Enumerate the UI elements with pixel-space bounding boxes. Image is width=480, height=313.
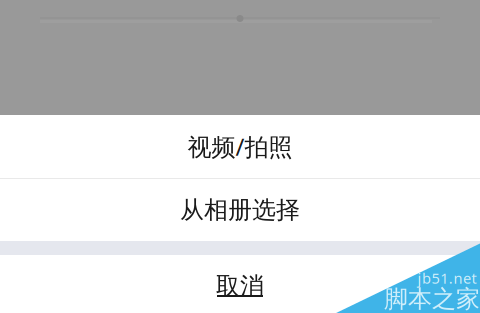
button[interactable]: 从相册选择 bbox=[0, 179, 480, 241]
staticText: 取消 bbox=[216, 271, 264, 301]
staticText: jb51.net bbox=[417, 268, 477, 288]
button[interactable]: 视频/拍照 bbox=[0, 115, 480, 178]
staticText: 脚本之家 bbox=[384, 284, 480, 313]
staticText: 从相册选择 bbox=[180, 195, 300, 225]
button[interactable]: 取消 bbox=[0, 255, 480, 313]
staticText: 视频/拍照 bbox=[187, 131, 292, 162]
